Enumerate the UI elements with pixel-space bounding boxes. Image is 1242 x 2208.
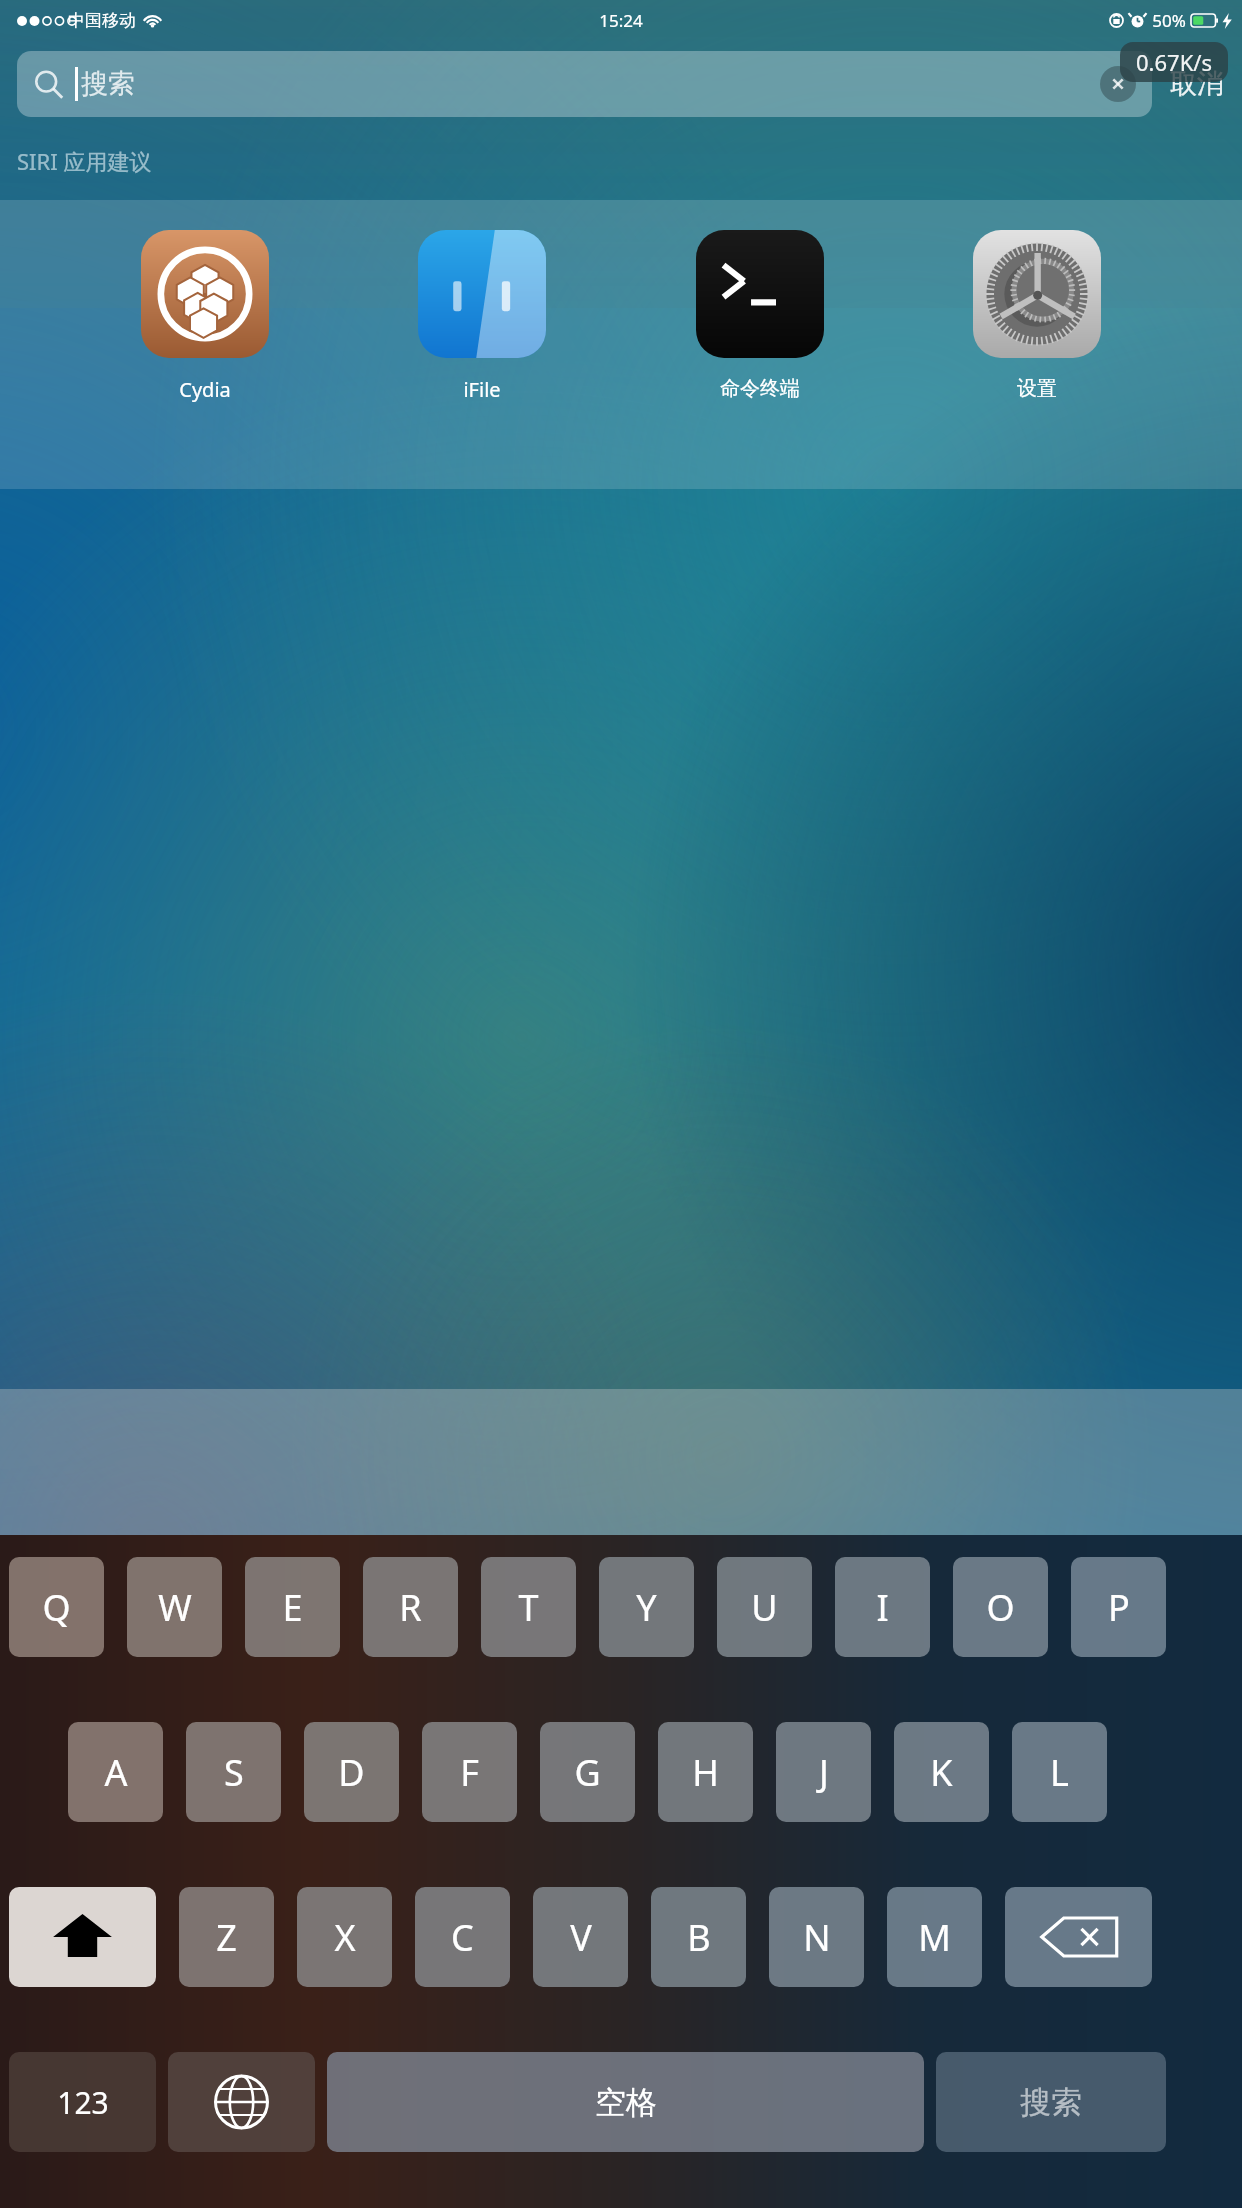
button[interactable]: R: [363, 1557, 458, 1657]
button[interactable]: Change keyboard: [168, 2052, 315, 2152]
button[interactable]: Q: [9, 1557, 104, 1657]
staticText: M: [918, 1913, 951, 1962]
button[interactable]: 设置: [957, 230, 1117, 401]
button[interactable]: iFile: [402, 230, 562, 403]
button[interactable]: T: [481, 1557, 576, 1657]
staticText: 123: [57, 2082, 109, 2123]
staticText: I: [876, 1583, 889, 1632]
staticText: Y: [636, 1583, 657, 1632]
button[interactable]: N: [769, 1887, 864, 1987]
staticText: 搜索: [1020, 2083, 1082, 2122]
staticText: C: [451, 1913, 474, 1962]
button[interactable]: E: [245, 1557, 340, 1657]
button[interactable]: F: [422, 1722, 517, 1822]
staticText: 中国移动: [68, 10, 136, 31]
staticText: P: [1108, 1583, 1130, 1632]
staticText: iFile: [463, 376, 501, 403]
staticText: O: [986, 1583, 1015, 1632]
button[interactable]: I: [835, 1557, 930, 1657]
staticText: G: [574, 1748, 601, 1797]
button[interactable]: P: [1071, 1557, 1166, 1657]
button[interactable]: A: [68, 1722, 163, 1822]
staticText: D: [338, 1748, 365, 1797]
staticText: V: [570, 1913, 592, 1962]
button[interactable]: 搜索: [17, 51, 1152, 117]
button[interactable]: K: [894, 1722, 989, 1822]
staticText: K: [930, 1748, 953, 1797]
staticText: Cydia: [179, 376, 231, 403]
staticText: 设置: [1017, 376, 1057, 401]
button[interactable]: L: [1012, 1722, 1107, 1822]
button[interactable]: C: [415, 1887, 510, 1987]
button[interactable]: B: [651, 1887, 746, 1987]
staticText: B: [687, 1913, 711, 1962]
staticText: A: [104, 1748, 128, 1797]
button[interactable]: Shift: [9, 1887, 156, 1987]
button[interactable]: G: [540, 1722, 635, 1822]
staticText: W: [158, 1583, 192, 1632]
staticText: N: [803, 1913, 831, 1962]
staticText: F: [460, 1748, 479, 1797]
button[interactable]: 取消: [1166, 67, 1228, 101]
button[interactable]: 搜索: [936, 2052, 1166, 2152]
button[interactable]: U: [717, 1557, 812, 1657]
button[interactable]: 空格: [327, 2052, 924, 2152]
button[interactable]: M: [887, 1887, 982, 1987]
staticText: U: [751, 1583, 778, 1632]
staticText: S: [224, 1748, 244, 1797]
staticText: X: [334, 1913, 356, 1962]
staticText: 15:24: [599, 9, 643, 32]
staticText: T: [518, 1583, 539, 1632]
button[interactable]: O: [953, 1557, 1048, 1657]
staticText: R: [399, 1583, 422, 1632]
button[interactable]: S: [186, 1722, 281, 1822]
staticText: 取消: [1170, 67, 1224, 101]
staticText: 50%: [1152, 9, 1186, 32]
staticText: Z: [216, 1913, 237, 1962]
staticText: 空格: [595, 2083, 657, 2122]
button[interactable]: Backspace: [1005, 1887, 1152, 1987]
button[interactable]: J: [776, 1722, 871, 1822]
button[interactable]: V: [533, 1887, 628, 1987]
button[interactable]: W: [127, 1557, 222, 1657]
button[interactable]: 命令终端: [680, 230, 840, 401]
staticText: 0.67K/s: [1136, 47, 1212, 77]
staticText: 搜索: [81, 67, 135, 101]
button[interactable]: Cydia: [125, 230, 285, 403]
staticText: H: [692, 1748, 719, 1797]
staticText: J: [819, 1748, 829, 1797]
button[interactable]: 123: [9, 2052, 156, 2152]
staticText: 命令终端: [720, 376, 800, 401]
staticText: L: [1050, 1748, 1069, 1797]
button[interactable]: Z: [179, 1887, 274, 1987]
button[interactable]: D: [304, 1722, 399, 1822]
button[interactable]: H: [658, 1722, 753, 1822]
staticText: SIRI 应用建议: [17, 146, 152, 176]
staticText: E: [282, 1583, 303, 1632]
button[interactable]: Clear: [1100, 66, 1136, 102]
button[interactable]: X: [297, 1887, 392, 1987]
staticText: Q: [42, 1583, 71, 1632]
button[interactable]: Y: [599, 1557, 694, 1657]
